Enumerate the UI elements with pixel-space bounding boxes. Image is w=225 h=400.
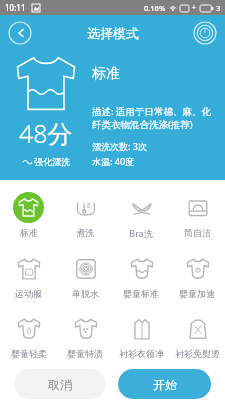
button[interactable]: 煮洗 <box>57 188 113 242</box>
button[interactable]: 强化漂洗 <box>15 154 78 169</box>
staticText: 标准 <box>92 65 120 83</box>
button[interactable]: Timer <box>193 21 217 45</box>
staticText: 48分 <box>19 116 73 150</box>
button[interactable]: 开始 <box>118 369 211 399</box>
staticText: 婴童轻柔 <box>11 348 47 359</box>
staticText: 婴童加速 <box>179 288 215 299</box>
button[interactable]: Back <box>8 21 32 45</box>
staticText: 水温: 40度 <box>92 155 135 167</box>
button[interactable]: 婴童轻柔 <box>0 309 57 363</box>
staticText: 3 <box>216 3 221 13</box>
button[interactable]: 婴童加速 <box>169 249 225 303</box>
staticText: 煮洗 <box>76 227 94 238</box>
staticText: 衬衫免熨烫 <box>175 348 220 359</box>
staticText: 婴童标准 <box>123 288 159 299</box>
staticText: 开始 <box>153 377 177 392</box>
staticText: 描述: 适用于日常棉、麻、化纤类衣物混合洗涤(推荐) <box>92 105 215 131</box>
button[interactable]: 筒自洁 <box>169 188 225 242</box>
staticText: 0.16% <box>144 3 166 13</box>
button[interactable]: 运动服 <box>0 249 57 303</box>
button[interactable]: Bra洗 <box>113 188 169 243</box>
button[interactable]: 取消 <box>14 369 106 399</box>
staticText: 标准 <box>20 227 38 238</box>
button[interactable]: 衬衫免熨烫 <box>169 309 225 363</box>
staticText: 选择模式 <box>87 25 139 41</box>
staticText: 筒自洁 <box>184 227 211 238</box>
staticText: 强化漂洗 <box>34 156 70 167</box>
button[interactable]: 衬衫衣领净 <box>113 309 169 363</box>
button[interactable]: 标准 <box>0 188 57 242</box>
staticText: 运动服 <box>15 288 42 299</box>
staticText: 婴童特渍 <box>67 348 103 359</box>
staticText: 取消 <box>48 377 72 392</box>
button[interactable]: 婴童特渍 <box>57 309 113 363</box>
staticText: 单脱水 <box>72 288 99 299</box>
staticText: 漂洗次数: 3次 <box>92 140 147 152</box>
button[interactable]: 婴童标准 <box>113 249 169 303</box>
staticText: 10:11 <box>5 2 26 13</box>
staticText: + <box>192 3 197 13</box>
staticText: 衬衫衣领净 <box>119 348 164 359</box>
staticText: Bra洗 <box>129 227 153 239</box>
button[interactable]: 单脱水 <box>57 249 113 303</box>
